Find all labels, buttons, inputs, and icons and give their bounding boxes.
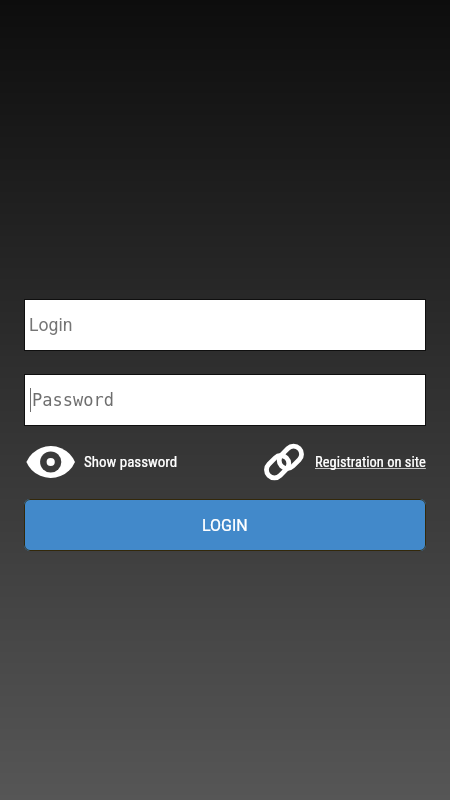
staticText: Password — [32, 390, 114, 410]
button[interactable]: Show password — [24, 446, 178, 478]
button[interactable]: Registration on site — [264, 442, 426, 482]
staticText: Show password — [84, 453, 178, 471]
staticText: Registration on site — [315, 454, 426, 471]
staticText: Login — [29, 315, 73, 336]
button[interactable]: Login — [24, 299, 426, 351]
button[interactable]: Password — [24, 374, 426, 426]
other: Registration on site — [264, 442, 304, 482]
other: Show password — [24, 446, 75, 478]
button[interactable]: LOGIN — [24, 499, 426, 551]
staticText: LOGIN — [202, 516, 248, 535]
